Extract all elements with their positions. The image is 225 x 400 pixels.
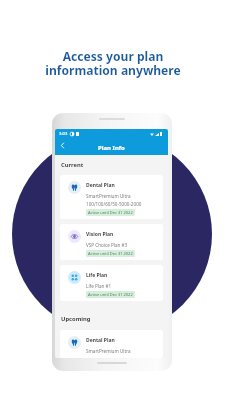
staticText: 100/100/60/50-5000-2000 xyxy=(86,201,142,207)
staticText: SmartPremium Ultra xyxy=(86,348,131,354)
staticText: Active until Dec 31 2022 xyxy=(88,292,133,297)
staticText: SmartPremium Ultra xyxy=(86,193,131,199)
staticText: 3:03 xyxy=(59,131,68,137)
staticText: Plan Info xyxy=(98,144,125,152)
staticText: Upcoming xyxy=(61,315,91,323)
button[interactable]: Life Plan xyxy=(60,265,163,301)
button[interactable]: Back xyxy=(57,140,68,151)
button[interactable]: Dental Plan xyxy=(60,175,163,219)
staticText: Active until Dec 31 2022 xyxy=(88,251,133,256)
staticText: Access your plan information anywhere xyxy=(45,48,181,79)
staticText: VSP Choice Plan #3 xyxy=(86,242,128,248)
button[interactable]: Vision Plan xyxy=(60,224,163,260)
staticText: Life Plan #1 xyxy=(86,283,112,289)
staticText: Current xyxy=(61,161,84,169)
button[interactable]: Dental Plan xyxy=(60,330,163,358)
staticText: Dental Plan xyxy=(86,337,115,344)
staticText: Vision Plan xyxy=(86,231,114,238)
staticText: Active until Dec 31 2022 xyxy=(88,210,133,215)
staticText: Life Plan xyxy=(86,272,108,279)
staticText: Dental Plan xyxy=(86,182,115,189)
